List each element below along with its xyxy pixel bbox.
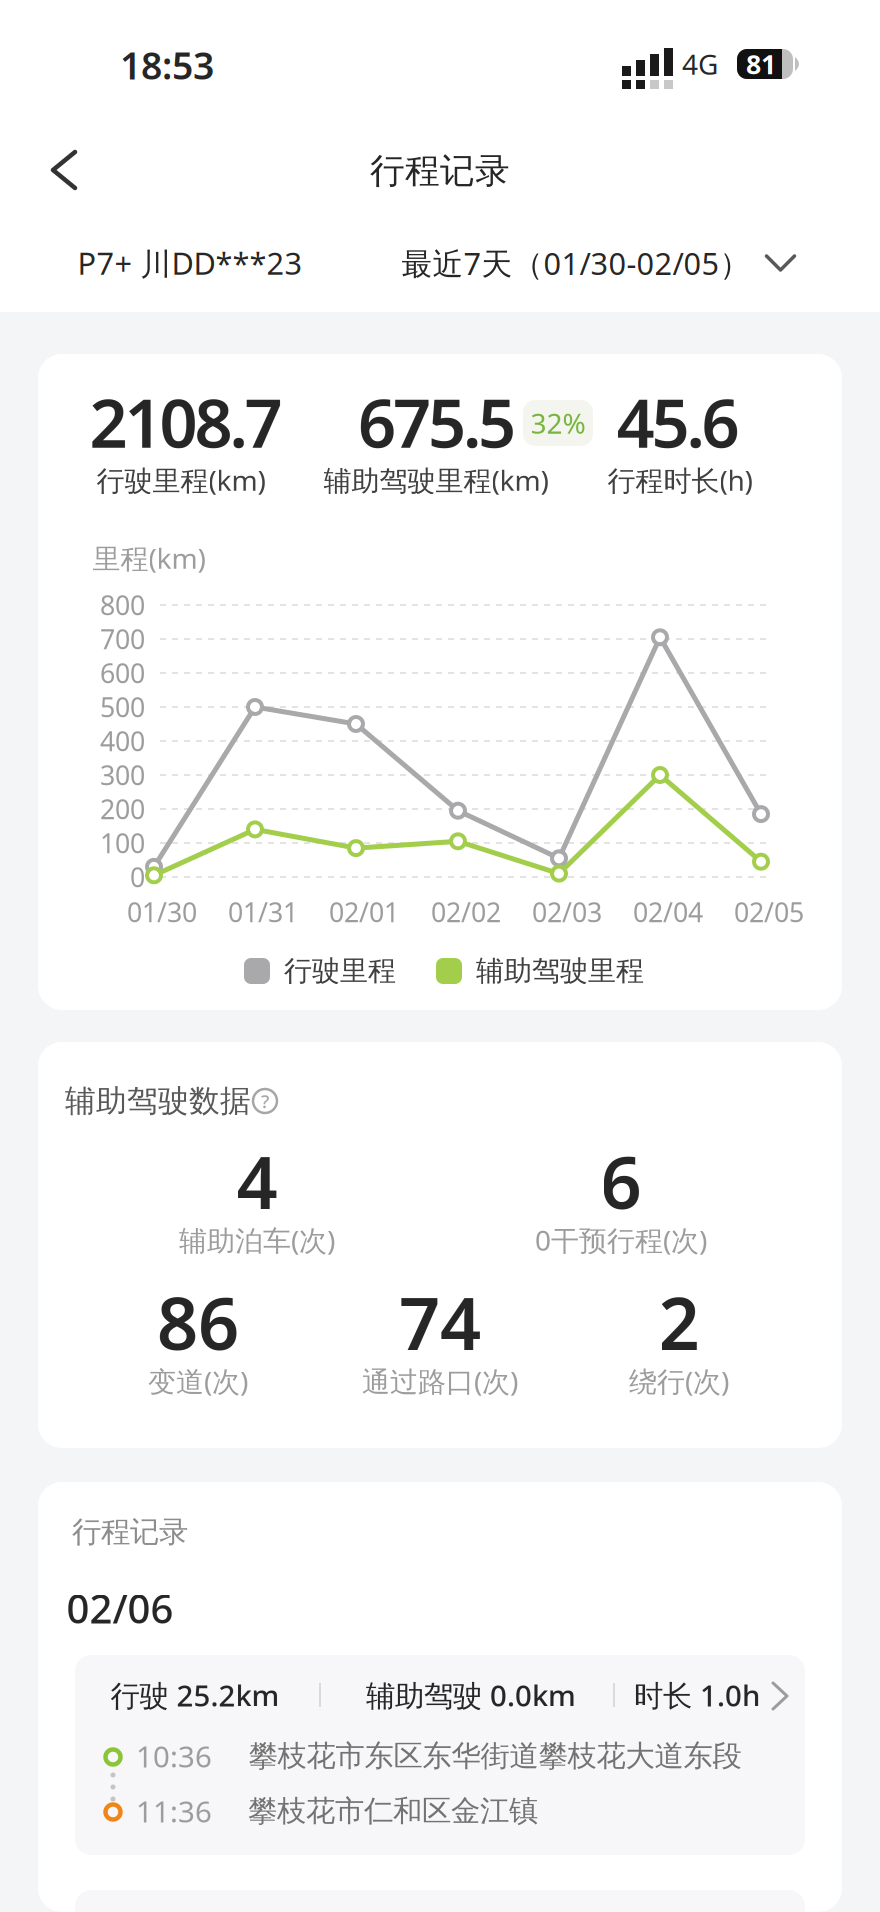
staticText: 11:36	[136, 1791, 212, 1830]
staticText: 辅助驾驶数据	[65, 1082, 251, 1120]
staticText: 400	[100, 723, 145, 759]
staticText: 行程时长(h)	[607, 461, 752, 499]
staticText: 01/30	[127, 894, 197, 930]
staticText: 02/06	[66, 1581, 173, 1634]
staticText: 100	[100, 825, 145, 861]
staticText: 时长 1.0h	[634, 1675, 760, 1714]
staticText: 4G	[682, 45, 718, 83]
staticText: 500	[100, 689, 145, 725]
staticText: 行程记录	[370, 150, 510, 192]
staticText: 辅助驾驶里程(km)	[323, 461, 548, 499]
staticText: 行驶里程(km)	[96, 461, 265, 499]
staticText: 700	[100, 621, 145, 657]
button[interactable]: 行驶 25.2km	[75, 1655, 805, 1855]
staticText: 6	[600, 1133, 641, 1229]
staticText: 4	[236, 1133, 277, 1229]
staticText: P7+ 川DD***23	[77, 243, 302, 283]
staticText: 2	[658, 1274, 699, 1370]
staticText: 02/05	[734, 894, 804, 930]
staticText: 86	[157, 1274, 239, 1370]
staticText: 02/02	[431, 894, 501, 930]
staticText: 02/04	[633, 894, 703, 930]
staticText: 攀枝花市东区东华街道攀枝花大道东段	[248, 1738, 741, 1774]
staticText: 攀枝花市仁和区金江镇	[248, 1793, 538, 1829]
staticText: 通过路口(次)	[362, 1362, 518, 1400]
staticText: 45.6	[616, 378, 739, 466]
staticText: 0干预行程(次)	[535, 1221, 707, 1259]
button[interactable]: 最近7天（01/30-02/05）	[401, 243, 794, 283]
staticText: 里程(km)	[92, 539, 205, 577]
staticText: 变道(次)	[148, 1362, 248, 1400]
staticText: 最近7天（01/30-02/05）	[401, 243, 750, 283]
staticText: 0	[130, 859, 145, 895]
staticText: 18:53	[120, 40, 214, 90]
staticText: 675.5	[358, 378, 516, 466]
staticText: 800	[100, 587, 145, 623]
staticText: 02/01	[329, 894, 399, 930]
button[interactable]: 辅助驾驶数据说明	[245, 1081, 285, 1121]
staticText: 绕行(次)	[629, 1362, 729, 1400]
staticText: 行程记录	[72, 1514, 188, 1550]
staticText: 600	[100, 655, 145, 691]
staticText: 74	[399, 1274, 481, 1370]
staticText: 10:36	[136, 1736, 212, 1775]
staticText: 2108.7	[89, 378, 282, 466]
staticText: ?	[261, 1089, 269, 1113]
staticText: 行驶里程	[284, 954, 396, 988]
staticText: 行驶 25.2km	[110, 1675, 279, 1714]
staticText: 02/03	[532, 894, 602, 930]
staticText: 辅助泊车(次)	[179, 1221, 335, 1259]
staticText: 辅助驾驶里程	[476, 954, 644, 988]
button[interactable]: Back	[34, 140, 94, 200]
staticText: 01/31	[228, 894, 298, 930]
button[interactable]: P7+ 川DD***23	[77, 243, 302, 283]
staticText: 辅助驾驶 0.0km	[366, 1675, 576, 1714]
staticText: 81	[746, 46, 776, 82]
staticText: 300	[100, 757, 145, 793]
staticText: 32%	[530, 404, 585, 442]
staticText: 200	[100, 791, 145, 827]
